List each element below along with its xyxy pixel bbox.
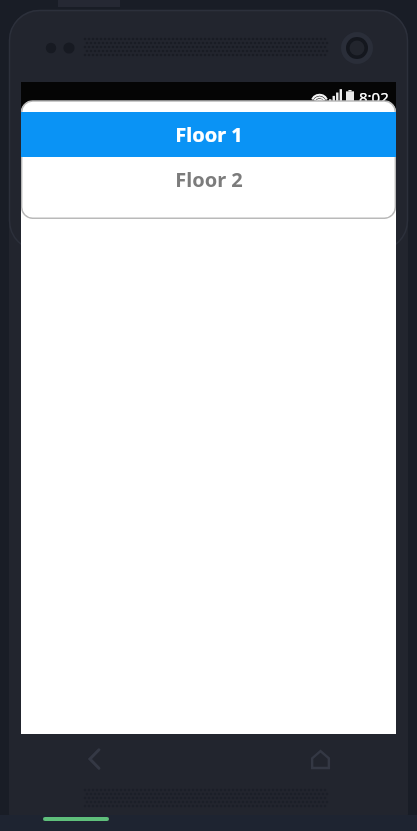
button[interactable]: Back bbox=[72, 742, 118, 776]
button[interactable]: Home bbox=[298, 742, 342, 776]
button[interactable]: Floor 1 bbox=[21, 112, 396, 157]
staticText: 8:02 bbox=[359, 87, 389, 107]
button[interactable]: Floor 2 bbox=[21, 157, 396, 219]
staticText: Floor 1 bbox=[175, 121, 243, 148]
staticText: Floor 2 bbox=[175, 166, 243, 193]
